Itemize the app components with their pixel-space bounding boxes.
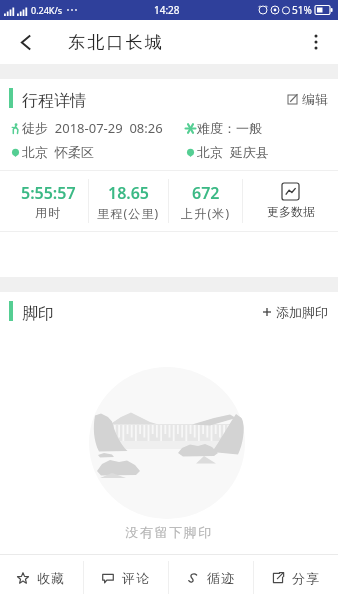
- button[interactable]: Back: [0, 20, 52, 64]
- staticText: 评论: [122, 570, 151, 586]
- staticText: 672: [192, 182, 220, 204]
- staticText: 编辑: [302, 91, 328, 107]
- staticText: 行程详情: [22, 91, 86, 111]
- staticText: 没有留下脚印: [0, 524, 338, 540]
- staticText: 用时: [35, 205, 62, 220]
- button[interactable]: 循迹: [169, 555, 253, 600]
- staticText: 徒步 2018-07-29 08:26: [22, 119, 163, 137]
- button[interactable]: 收藏: [0, 555, 83, 600]
- staticText: 51%: [292, 3, 312, 17]
- staticText: 北京 延庆县: [197, 143, 269, 161]
- staticText: 5:55:57: [21, 182, 76, 204]
- button[interactable]: More options: [294, 20, 338, 64]
- staticText: 更多数据: [267, 204, 315, 219]
- staticText: 上升(米): [181, 205, 231, 221]
- button[interactable]: 更多数据: [243, 171, 338, 231]
- staticText: 18.65: [108, 182, 150, 204]
- button[interactable]: 添加脚印: [251, 298, 338, 326]
- staticText: 分享: [292, 570, 321, 586]
- button[interactable]: 分享: [254, 555, 338, 600]
- staticText: 难度：一般: [197, 120, 262, 136]
- staticText: 脚印: [22, 304, 54, 324]
- staticText: 14:28: [154, 3, 180, 17]
- staticText: 东北口长城: [67, 32, 163, 53]
- button[interactable]: 编辑: [276, 85, 338, 113]
- staticText: 循迹: [207, 570, 236, 586]
- staticText: 北京 怀柔区: [22, 143, 94, 161]
- staticText: 收藏: [37, 570, 66, 586]
- staticText: 添加脚印: [276, 304, 328, 320]
- staticText: 0.24K/s: [31, 4, 63, 16]
- staticText: 里程(公里): [97, 205, 160, 221]
- button[interactable]: 评论: [84, 555, 168, 600]
